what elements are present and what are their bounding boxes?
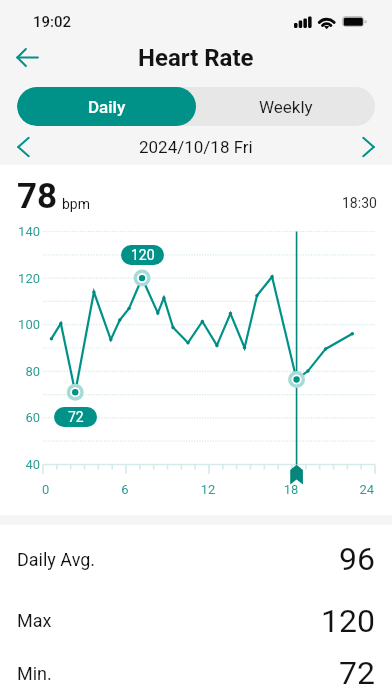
staticText: 40 (6, 457, 40, 472)
staticText: 120 (321, 602, 375, 640)
staticText: 24 (344, 482, 374, 497)
staticText: Min. (17, 663, 52, 684)
button[interactable]: Max (0, 590, 392, 651)
staticText: 72 (68, 409, 84, 425)
staticText: 19:02 (33, 13, 72, 31)
button[interactable]: Weekly (196, 87, 375, 126)
staticText: Heart Rate (138, 44, 254, 72)
staticText: 18:30 (342, 195, 377, 211)
button[interactable]: Daily Avg. (0, 528, 392, 590)
staticText: 2024/10/18 Fri (139, 137, 253, 157)
staticText: Max (17, 610, 52, 631)
button[interactable]: Next day (352, 130, 386, 164)
staticText: 100 (6, 317, 40, 332)
staticText: 0 (42, 482, 72, 497)
staticText: 78 (17, 176, 58, 216)
button[interactable]: Min. (0, 651, 392, 695)
staticText: 96 (339, 540, 375, 578)
staticText: 80 (6, 364, 40, 379)
button[interactable]: Back (8, 38, 46, 76)
staticText: Daily (88, 97, 126, 117)
staticText: 140 (6, 224, 40, 239)
staticText: 18 (276, 482, 306, 497)
staticText: 12 (193, 482, 223, 497)
staticText: 120 (6, 271, 40, 286)
staticText: 60 (6, 410, 40, 425)
staticText: bpm (62, 196, 90, 212)
button[interactable]: Daily (17, 87, 196, 126)
staticText: 120 (131, 247, 155, 263)
staticText: Daily Avg. (17, 549, 96, 570)
staticText: Weekly (259, 97, 313, 117)
button[interactable]: Previous day (6, 130, 40, 164)
staticText: 72 (339, 654, 375, 692)
staticText: 6 (110, 482, 140, 497)
